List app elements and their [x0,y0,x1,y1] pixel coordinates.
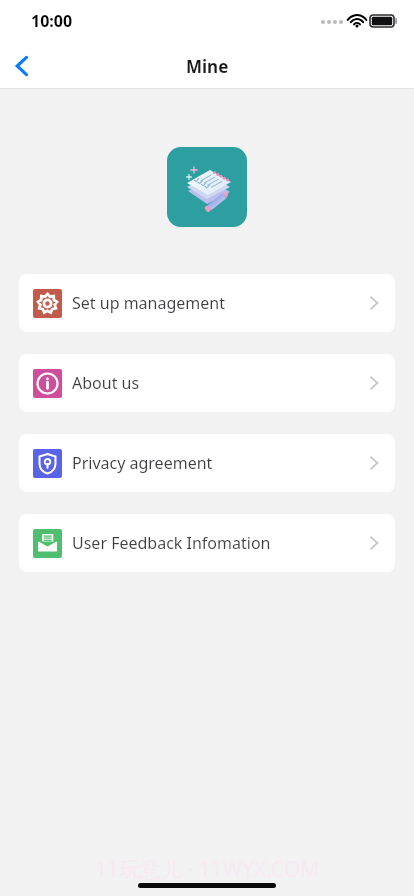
staticText: 11玩意儿 · 11WYX.COM [0,855,414,884]
button[interactable]: About us [19,354,395,412]
staticText: Mine [186,55,229,78]
button[interactable]: Back [0,44,44,88]
staticText: Set up management [72,292,225,314]
button[interactable]: Privacy agreement [19,434,395,492]
staticText: Privacy agreement [72,452,213,474]
staticText: User Feedback Infomation [72,532,271,554]
button[interactable]: Set up management [19,274,395,332]
staticText: About us [72,372,140,394]
staticText: 10:00 [31,10,73,32]
button[interactable]: User Feedback Infomation [19,514,395,572]
